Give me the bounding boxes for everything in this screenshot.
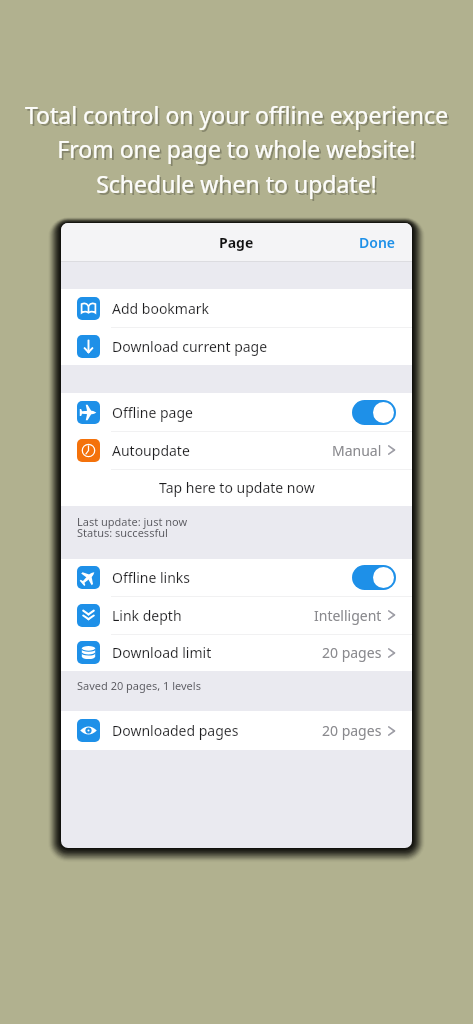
staticText: Download current page — [112, 337, 268, 356]
staticText: Intelligent — [314, 606, 382, 625]
staticText: Download limit — [112, 643, 212, 662]
staticText: Last update: just now Status: successful — [77, 514, 188, 540]
button[interactable]: Link depth — [61, 596, 412, 634]
button[interactable]: Downloaded pages — [61, 711, 412, 750]
button[interactable]: Done — [343, 223, 412, 261]
staticText: 20 pages — [322, 721, 382, 740]
staticText: Saved 20 pages, 1 levels — [77, 678, 201, 693]
button[interactable]: Offline page switch, on — [352, 400, 396, 425]
button[interactable]: Offline links switch, on — [352, 565, 396, 590]
button[interactable]: Offline page — [61, 393, 412, 431]
staticText: Downloaded pages — [112, 721, 239, 740]
staticText: Offline links — [112, 568, 191, 587]
staticText: Autoupdate — [112, 441, 190, 460]
staticText: Page — [219, 233, 254, 252]
staticText: Link depth — [112, 606, 182, 625]
staticText: Done — [359, 233, 396, 252]
button[interactable]: Add bookmark — [61, 289, 412, 327]
button[interactable]: Autoupdate — [61, 431, 412, 469]
button[interactable]: Offline links — [61, 559, 412, 596]
staticText: 20 pages — [322, 643, 382, 662]
staticText: Manual — [332, 441, 382, 460]
button[interactable]: Download current page — [61, 327, 412, 365]
staticText: Offline page — [112, 403, 193, 422]
staticText: Tap here to update now — [159, 478, 315, 497]
button[interactable]: Download limit — [61, 634, 412, 671]
staticText: Add bookmark — [112, 299, 210, 318]
button[interactable]: Tap here to update now — [61, 469, 412, 506]
staticText: Total control on your offline experience… — [2, 101, 473, 202]
staticText: Total control on your offline experience… — [0, 99, 473, 200]
